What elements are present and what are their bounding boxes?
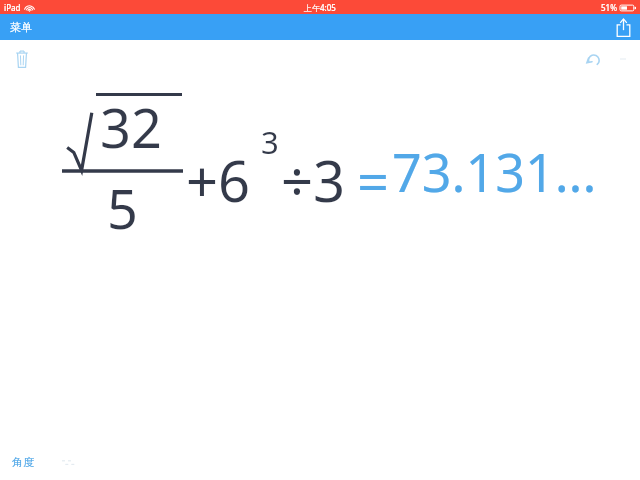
staticText: ÷3 — [281, 142, 346, 218]
staticText: 73.131... — [392, 136, 597, 207]
staticText: 菜单 — [10, 20, 32, 34]
staticText: 32 — [100, 90, 162, 164]
staticText: +6 — [186, 142, 251, 218]
staticText: 3 — [261, 121, 279, 163]
staticText: iPad — [4, 2, 21, 13]
staticText: = — [357, 142, 390, 218]
button[interactable]: 菜单 — [0, 14, 42, 40]
button[interactable]: Share — [606, 14, 640, 40]
button[interactable]: 角度 — [0, 449, 44, 475]
button[interactable]: Delete — [0, 40, 44, 78]
staticText: 角度 — [12, 455, 34, 469]
button[interactable]: Undo — [574, 40, 612, 78]
staticText: 51% — [601, 2, 617, 13]
staticText: 上午4:05 — [304, 2, 336, 13]
staticText: 5 — [107, 171, 138, 245]
button[interactable]: 73.131... — [392, 136, 597, 207]
